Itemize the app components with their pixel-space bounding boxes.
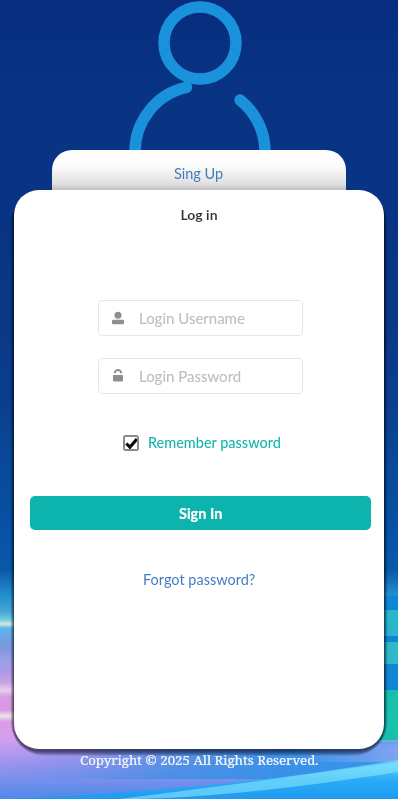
button[interactable]: Sing Up	[52, 150, 346, 195]
staticText: Login Username	[139, 309, 245, 327]
staticText: Login Password	[139, 367, 242, 385]
button[interactable]: Sign In	[30, 496, 371, 530]
staticText: Copyright © 2025 All Rights Reserved.	[80, 751, 319, 769]
button[interactable]: Forgot password?	[143, 571, 256, 588]
staticText: Remember password	[148, 434, 281, 451]
button[interactable]: Login Password	[98, 358, 303, 394]
button[interactable]: Login Username	[98, 300, 303, 336]
staticText: Sing Up	[174, 165, 224, 182]
staticText: Sign In	[179, 505, 223, 522]
button[interactable]: Remember password	[123, 434, 281, 451]
staticText: Log in	[180, 206, 218, 223]
